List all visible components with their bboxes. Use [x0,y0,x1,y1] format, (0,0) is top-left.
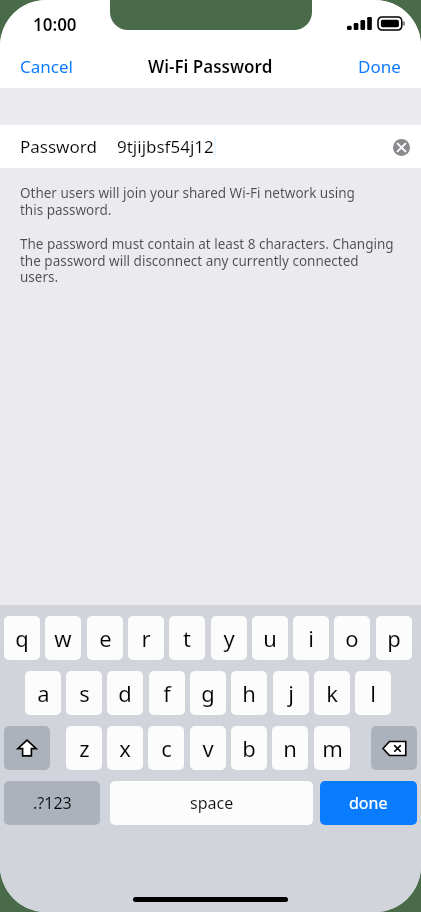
button[interactable]: t [169,616,205,660]
button[interactable]: Password [0,125,421,168]
button[interactable]: k [314,671,350,715]
button[interactable]: v [190,726,226,770]
staticText: z [79,733,90,763]
button[interactable]: Shift [4,726,50,770]
staticText: w [54,623,72,653]
staticText: e [99,623,112,653]
staticText: c [161,733,172,763]
staticText: q [15,623,29,653]
button[interactable]: p [376,616,412,660]
staticText: Other users will join your shared Wi-Fi … [20,184,360,219]
staticText: u [263,623,277,653]
button[interactable]: space [110,781,313,825]
button[interactable]: Backspace [371,726,417,770]
button[interactable]: b [231,726,267,770]
button[interactable]: Done [338,45,421,88]
staticText: Wi-Fi Password [148,55,273,78]
button[interactable]: f [149,671,185,715]
staticText: f [163,678,171,708]
button[interactable]: c [148,726,184,770]
staticText: l [370,678,376,708]
button[interactable]: r [128,616,164,660]
staticText: The password must contain at least 8 cha… [20,235,400,286]
staticText: Password [20,135,97,158]
button[interactable]: j [273,671,309,715]
button[interactable]: g [190,671,226,715]
staticText: b [242,733,256,763]
staticText: space [190,792,234,814]
staticText: Cancel [20,55,73,78]
button[interactable]: z [66,726,102,770]
staticText: done [349,792,388,814]
staticText: s [79,678,90,708]
staticText: i [308,623,314,653]
staticText: r [141,623,151,653]
staticText: m [322,733,343,763]
button[interactable]: m [314,726,350,770]
button[interactable]: q [4,616,40,660]
button[interactable]: Cancel [0,45,93,88]
staticText: n [283,733,297,763]
button[interactable]: done [320,781,417,825]
staticText: y [223,623,235,653]
staticText: j [288,678,294,708]
staticText: h [242,678,256,708]
button[interactable]: i [293,616,329,660]
staticText: k [326,678,338,708]
staticText: 10:00 [33,13,77,36]
button[interactable]: e [87,616,123,660]
staticText: t [183,623,191,653]
button[interactable]: h [231,671,267,715]
staticText: o [345,623,359,653]
button[interactable]: y [211,616,247,660]
staticText: a [37,678,50,708]
button[interactable]: a [25,671,61,715]
button[interactable]: n [272,726,308,770]
button[interactable]: s [66,671,102,715]
button[interactable]: w [45,616,81,660]
button[interactable]: .?123 [4,781,100,825]
button[interactable]: u [252,616,288,660]
button[interactable]: x [107,726,143,770]
button[interactable]: o [334,616,370,660]
button[interactable]: d [107,671,143,715]
staticText: x [119,733,131,763]
staticText: v [202,733,214,763]
staticText: d [118,678,132,708]
staticText: Done [358,55,401,78]
button[interactable]: l [355,671,391,715]
button[interactable]: Clear text [381,127,421,167]
staticText: g [201,678,215,708]
staticText: 9tjijbsf54j12 [117,135,214,158]
staticText: p [387,623,401,653]
staticText: .?123 [33,792,72,814]
